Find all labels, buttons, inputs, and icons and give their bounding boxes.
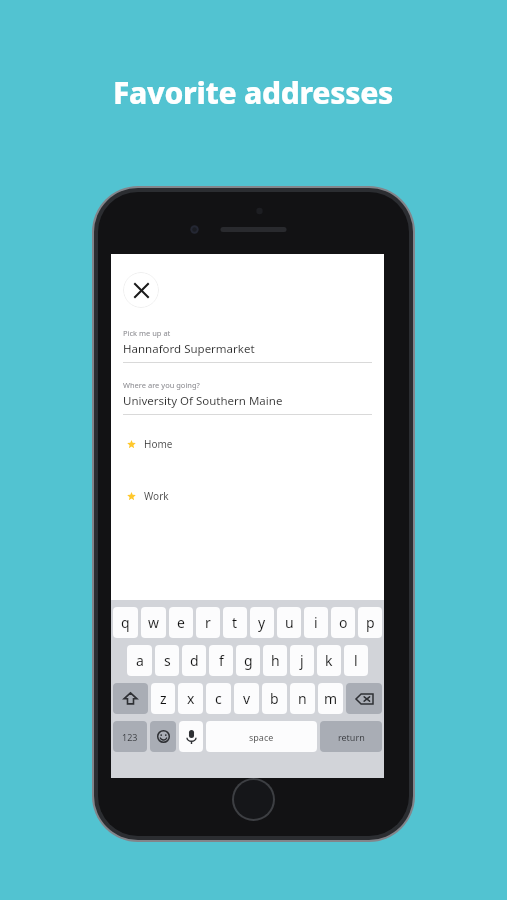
staticText: 123 — [122, 731, 138, 743]
staticText: c — [215, 689, 222, 708]
staticText: space — [249, 731, 274, 743]
staticText: o — [339, 613, 348, 632]
staticText: w — [148, 613, 160, 632]
button[interactable]: y — [250, 607, 274, 638]
button[interactable]: d — [182, 645, 206, 676]
button[interactable]: Shift — [113, 683, 148, 714]
staticText: a — [136, 651, 144, 670]
button[interactable]: space — [206, 721, 317, 752]
button[interactable]: s — [155, 645, 179, 676]
button[interactable]: c — [206, 683, 231, 714]
button[interactable]: e — [169, 607, 193, 638]
staticText: l — [354, 651, 358, 670]
staticText: q — [121, 613, 130, 632]
staticText: d — [190, 651, 199, 670]
staticText: z — [160, 689, 167, 708]
staticText: m — [324, 689, 338, 708]
button[interactable]: l — [344, 645, 368, 676]
staticText: University Of Southern Maine — [123, 393, 283, 409]
button[interactable]: j — [290, 645, 314, 676]
staticText: Favorite addresses — [113, 72, 394, 113]
button[interactable]: w — [141, 607, 166, 638]
staticText: s — [164, 651, 171, 670]
button[interactable]: r — [196, 607, 220, 638]
staticText: Home — [144, 437, 173, 451]
staticText: f — [219, 651, 224, 670]
staticText: u — [285, 613, 294, 632]
button[interactable]: m — [318, 683, 343, 714]
staticText: y — [258, 613, 266, 632]
button[interactable]: k — [317, 645, 341, 676]
button[interactable]: z — [151, 683, 175, 714]
button[interactable]: t — [223, 607, 247, 638]
button[interactable]: v — [234, 683, 259, 714]
staticText: e — [177, 613, 185, 632]
staticText: j — [300, 651, 304, 670]
staticText: r — [205, 613, 211, 632]
button[interactable]: p — [358, 607, 382, 638]
staticText: Work — [144, 489, 169, 503]
staticText: k — [325, 651, 333, 670]
button[interactable]: q — [113, 607, 138, 638]
staticText: Hannaford Supermarket — [123, 341, 255, 357]
button[interactable]: o — [331, 607, 355, 638]
button[interactable]: n — [290, 683, 315, 714]
button[interactable]: Emoji — [150, 721, 176, 752]
button[interactable]: Voice input — [179, 721, 203, 752]
button[interactable]: Home — [111, 431, 384, 457]
button[interactable]: Close — [123, 272, 159, 308]
staticText: h — [271, 651, 280, 670]
staticText: n — [298, 689, 307, 708]
button[interactable]: h — [263, 645, 287, 676]
button[interactable]: a — [127, 645, 152, 676]
button[interactable]: b — [262, 683, 287, 714]
staticText: b — [270, 689, 279, 708]
button[interactable]: x — [178, 683, 203, 714]
button[interactable]: Backspace — [346, 683, 382, 714]
staticText: x — [187, 689, 195, 708]
button[interactable]: g — [236, 645, 260, 676]
staticText: t — [232, 613, 238, 632]
button[interactable]: return — [320, 721, 382, 752]
staticText: Where are you going? — [123, 380, 200, 390]
staticText: Pick me up at — [123, 328, 171, 338]
staticText: p — [366, 613, 375, 632]
button[interactable]: u — [277, 607, 301, 638]
button[interactable]: f — [209, 645, 233, 676]
staticText: v — [243, 689, 251, 708]
staticText: i — [314, 613, 318, 632]
button[interactable]: 123 — [113, 721, 147, 752]
button[interactable]: i — [304, 607, 328, 638]
button[interactable]: Work — [111, 483, 384, 509]
staticText: g — [244, 651, 253, 670]
staticText: return — [338, 731, 365, 743]
